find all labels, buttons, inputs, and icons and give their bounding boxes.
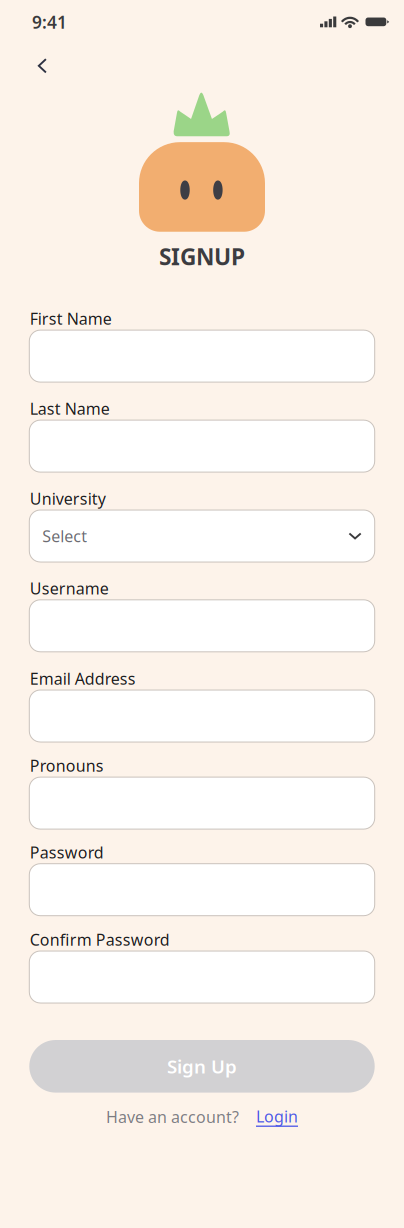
button[interactable]: Login xyxy=(239,1106,298,1128)
button[interactable] xyxy=(29,864,375,916)
staticText: Password xyxy=(30,842,104,863)
staticText: Username xyxy=(30,578,109,599)
staticText: University xyxy=(30,488,106,509)
staticText: First Name xyxy=(30,308,112,329)
staticText: SIGNUP xyxy=(159,241,245,272)
staticText: Email Address xyxy=(30,668,136,689)
staticText: Sign Up xyxy=(167,1054,237,1079)
button[interactable] xyxy=(29,330,375,382)
staticText: Last Name xyxy=(30,398,110,419)
staticText: Confirm Password xyxy=(30,929,170,950)
staticText: Login xyxy=(256,1106,298,1127)
staticText: Select xyxy=(42,525,87,547)
button[interactable]: Sign Up xyxy=(29,1040,375,1093)
staticText: Have an account? xyxy=(106,1106,239,1127)
button[interactable] xyxy=(29,600,375,652)
staticText: 9:41 xyxy=(32,10,67,33)
button[interactable] xyxy=(29,420,375,472)
button[interactable] xyxy=(29,951,375,1003)
staticText: Pronouns xyxy=(30,755,104,776)
button[interactable]: Select xyxy=(29,510,375,562)
button[interactable] xyxy=(29,690,375,742)
button[interactable] xyxy=(29,777,375,829)
button[interactable]: Back xyxy=(0,45,63,79)
